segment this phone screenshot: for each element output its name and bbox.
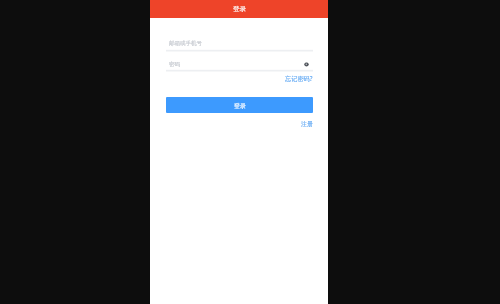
staticText: 密码 [169,61,180,68]
button[interactable]: 密码 [166,57,313,70]
button[interactable]: 注册 [301,119,313,128]
button[interactable]: 忘记密码? [285,73,313,83]
staticText: 忘记密码? [285,74,313,82]
staticText: 登录 [234,102,246,109]
staticText: 注册 [301,120,313,127]
button[interactable]: 邮箱或手机号 [166,37,313,50]
staticText: 邮箱或手机号 [169,40,202,47]
button[interactable]: 登录 [166,97,313,113]
staticText: 登录 [233,5,246,13]
button[interactable]: Show password [302,60,311,69]
